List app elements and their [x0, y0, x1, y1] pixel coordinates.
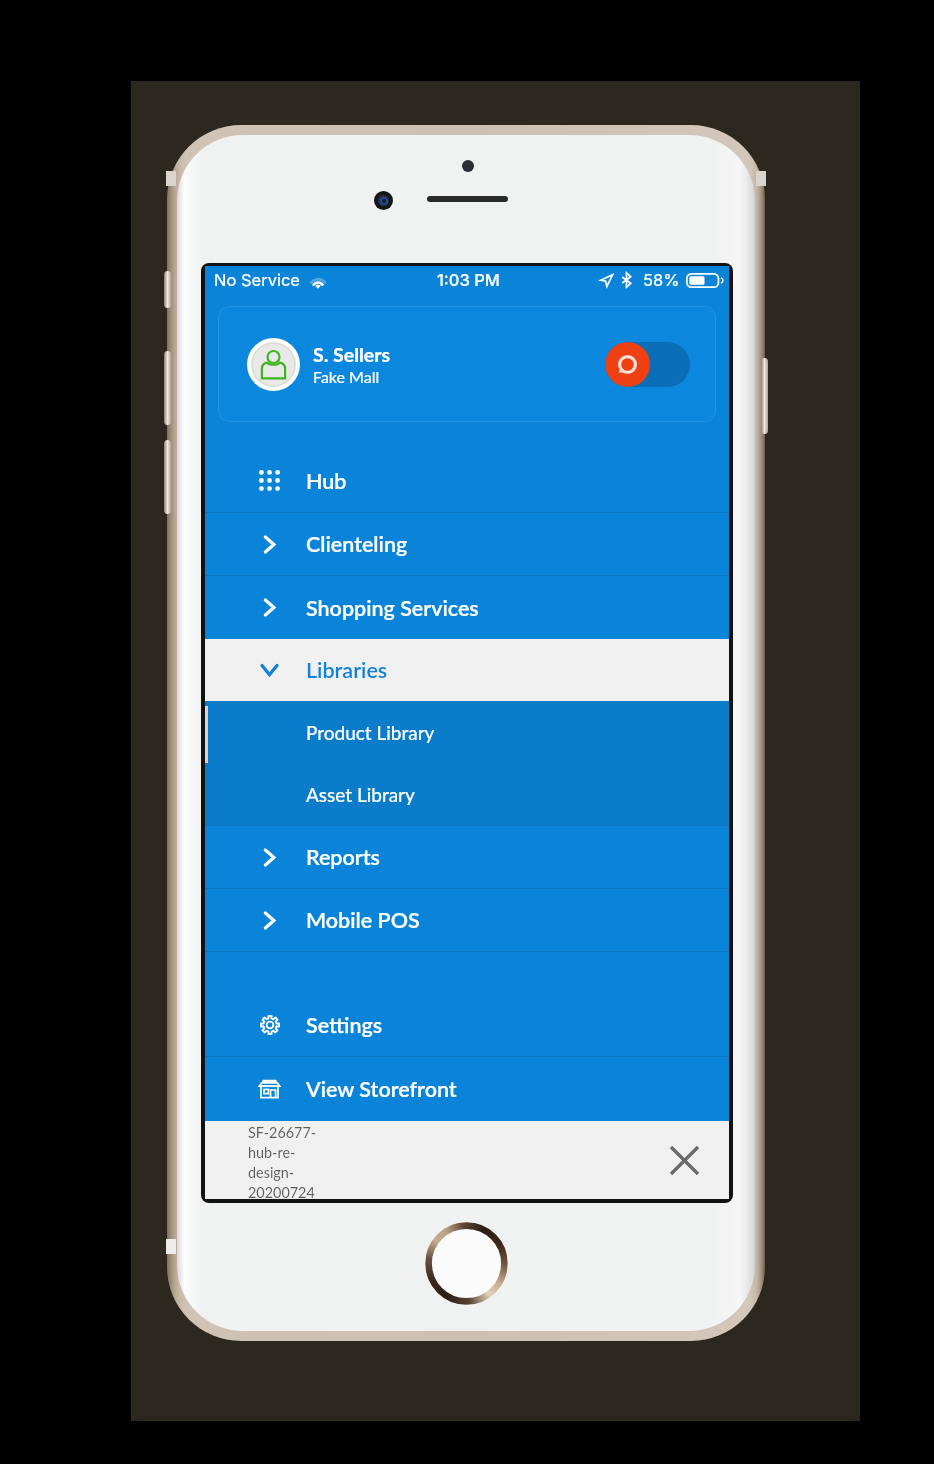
button[interactable]: Shopping Services [205, 576, 729, 639]
staticText: S. Sellers [313, 343, 391, 366]
button[interactable]: Clienteling [205, 513, 729, 575]
button[interactable]: Asset Library [205, 763, 729, 825]
button[interactable]: Hub [205, 449, 729, 512]
button[interactable]: Mobile POS [205, 889, 729, 951]
staticText: Shopping Services [306, 595, 479, 621]
staticText: Reports [306, 844, 380, 870]
staticText: 1:03 PM [437, 270, 500, 290]
staticText: Product Library [306, 721, 435, 744]
button[interactable]: Settings [205, 994, 729, 1056]
staticText: No Service [214, 270, 300, 290]
staticText: SF-26677- hub-re- design- 20200724 [248, 1124, 317, 1201]
staticText: View Storefront [306, 1076, 457, 1102]
staticText: Asset Library [306, 783, 415, 806]
button[interactable]: Libraries [205, 639, 729, 701]
button[interactable]: View Storefront [205, 1057, 729, 1120]
staticText: Libraries [306, 657, 388, 683]
button[interactable]: Chat [605, 342, 690, 387]
button[interactable]: S. Sellers [218, 306, 716, 422]
staticText: Hub [306, 468, 347, 494]
button[interactable]: Close [662, 1138, 707, 1183]
button[interactable]: Product Library [205, 701, 729, 763]
staticText: Mobile POS [306, 907, 420, 933]
staticText: Clienteling [306, 531, 408, 557]
button[interactable]: Reports [205, 826, 729, 888]
staticText: Fake Mall [313, 367, 380, 386]
staticText: 58% [643, 270, 680, 290]
staticText: Settings [306, 1012, 383, 1038]
